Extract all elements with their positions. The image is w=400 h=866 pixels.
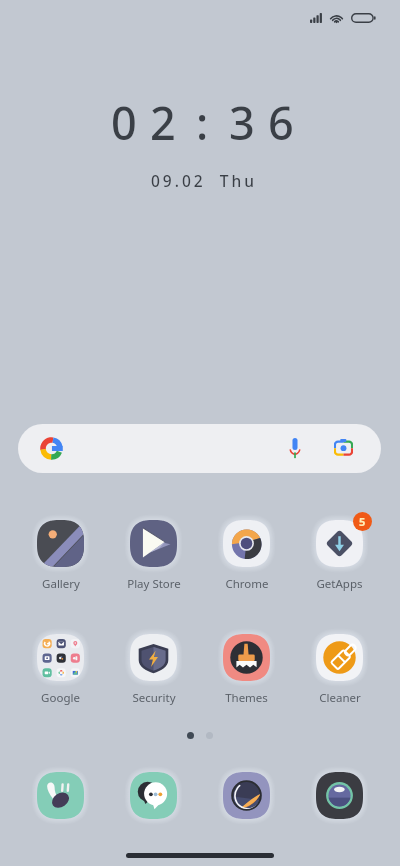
button[interactable]: Phone [37,772,84,819]
button[interactable]: Security [107,634,200,706]
staticText: 3 [229,92,250,153]
button[interactable]: Chrome [200,520,293,592]
staticText: 09.02 Thu [151,170,257,191]
staticText: Themes [225,690,268,706]
staticText: 0 [111,92,132,153]
button[interactable]: Google [14,634,107,706]
button[interactable]: 5 [293,520,386,592]
button[interactable]: Camera [316,772,363,819]
staticText: Play Store [127,576,181,592]
button[interactable]: Gallery [14,520,107,592]
button[interactable] [18,424,381,473]
staticText: 2 [150,92,171,153]
button[interactable]: Play Store [107,520,200,592]
staticText: 5 [359,514,366,529]
staticText: Security [132,690,176,706]
button[interactable]: Messages [130,772,177,819]
button[interactable]: Themes [200,634,293,706]
button[interactable]: Cleaner [293,634,386,706]
staticText: Chrome [225,576,269,592]
staticText: Google [41,690,80,706]
staticText: Gallery [42,576,80,592]
staticText: GetApps [316,576,363,592]
button[interactable]: Browser [223,772,270,819]
staticText: : [196,92,205,153]
staticText: 6 [268,92,289,153]
staticText: Cleaner [319,690,361,706]
